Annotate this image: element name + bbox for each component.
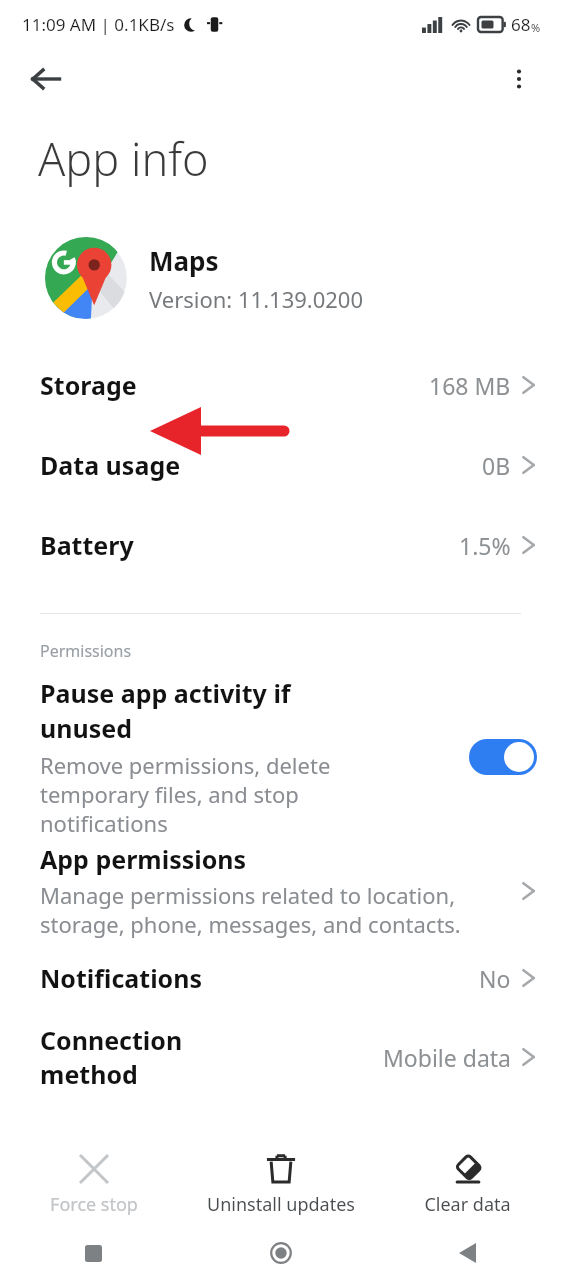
- button[interactable]: Home: [187, 1224, 374, 1282]
- button[interactable]: Data usage: [0, 425, 561, 505]
- button[interactable]: Pause app activity toggle: [469, 739, 537, 775]
- staticText: Uninstall updates: [207, 1192, 355, 1217]
- staticText: Storage: [40, 368, 137, 402]
- button[interactable]: Force stop: [0, 1144, 187, 1224]
- staticText: method: [40, 1057, 138, 1091]
- staticText: 168 MB: [429, 370, 511, 401]
- button[interactable]: Battery: [0, 505, 561, 585]
- button[interactable]: Notifications: [0, 947, 561, 1009]
- staticText: App info: [38, 128, 209, 189]
- button[interactable]: Recents: [0, 1224, 187, 1282]
- button[interactable]: Uninstall updates: [187, 1144, 374, 1224]
- staticText: Remove permissions, delete temporary fil…: [40, 750, 331, 838]
- staticText: 68: [511, 13, 531, 36]
- staticText: Maps: [149, 243, 219, 278]
- button[interactable]: Back: [374, 1224, 561, 1282]
- staticText: Clear data: [424, 1192, 511, 1217]
- button[interactable]: Pause app activity if unused: [0, 676, 561, 838]
- staticText: Permissions: [40, 640, 132, 662]
- button[interactable]: App permissions: [0, 838, 561, 939]
- button[interactable]: Connection: [0, 1023, 561, 1091]
- staticText: 1.5%: [459, 530, 511, 561]
- staticText: Manage permissions related to location, …: [40, 880, 461, 939]
- staticText: Version: 11.139.0200: [149, 284, 364, 314]
- staticText: 11:09 AM | 0.1KB/s: [22, 13, 175, 36]
- staticText: Data usage: [40, 448, 181, 482]
- staticText: Battery: [40, 528, 134, 562]
- button[interactable]: Back: [22, 55, 70, 103]
- staticText: Force stop: [50, 1192, 138, 1217]
- button[interactable]: More options: [495, 55, 543, 103]
- staticText: Pause app activity if unused: [40, 676, 291, 746]
- staticText: No: [479, 963, 511, 994]
- staticText: Mobile data: [383, 1042, 511, 1073]
- staticText: Notifications: [40, 961, 203, 995]
- button[interactable]: Storage: [0, 345, 561, 425]
- staticText: 0B: [482, 450, 511, 481]
- staticText: %: [531, 20, 541, 35]
- button[interactable]: Clear data: [374, 1144, 561, 1224]
- staticText: App permissions: [40, 842, 247, 876]
- staticText: Connection: [40, 1023, 183, 1057]
